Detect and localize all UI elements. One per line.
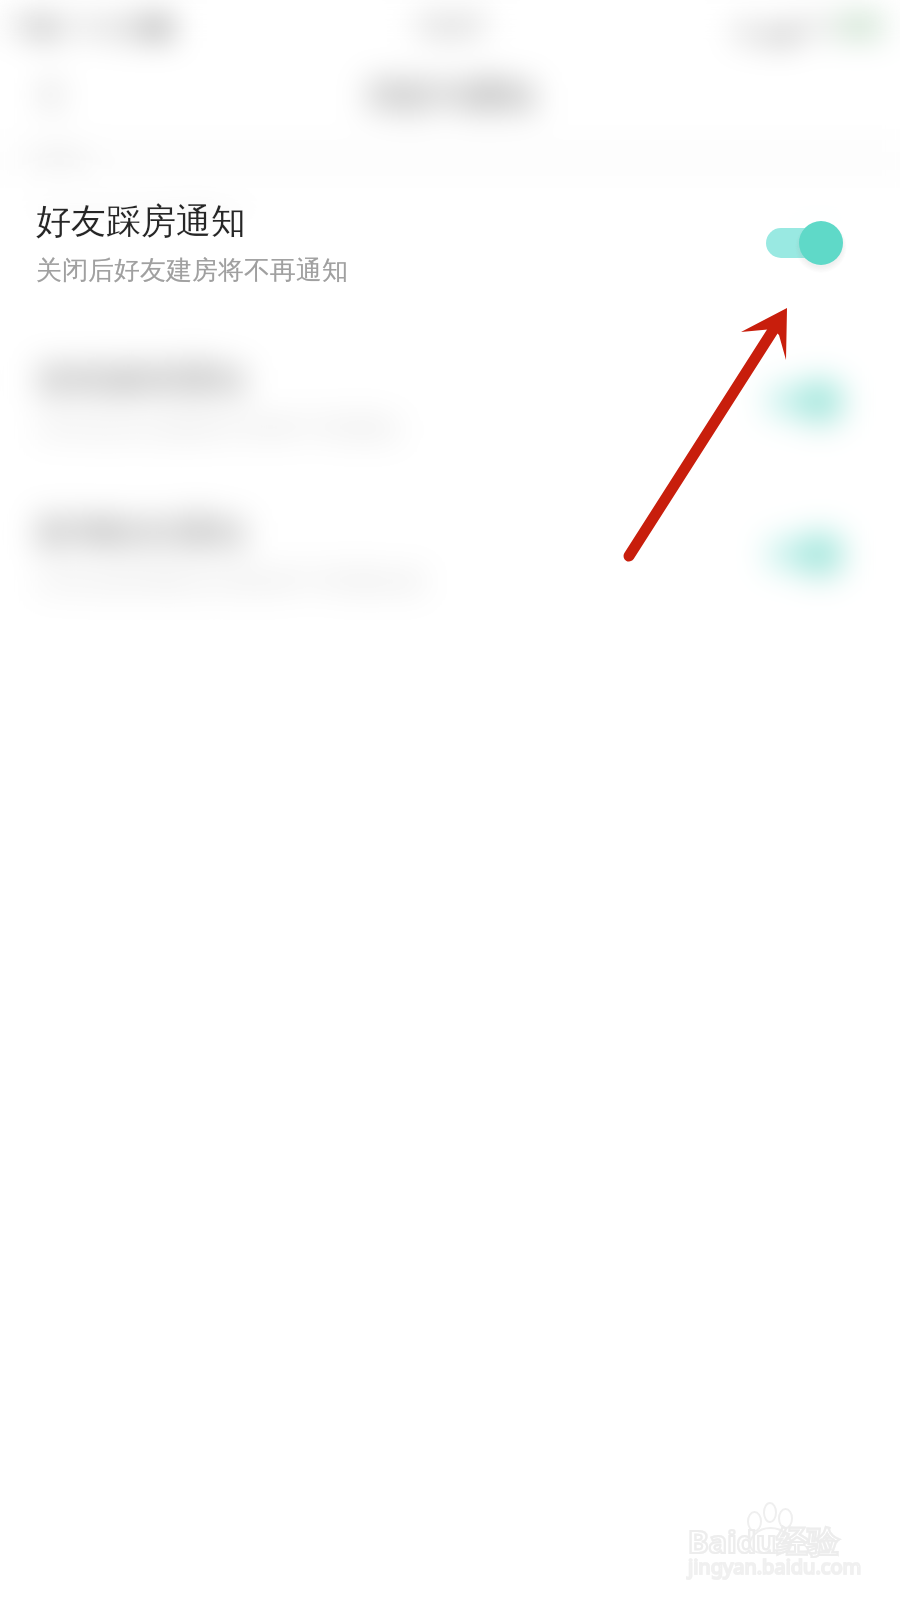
staticText: jingyan.baidu.com: [688, 1553, 862, 1580]
staticText: Baidu经验: [688, 1520, 839, 1562]
staticText: 好友踩房通知: [36, 199, 246, 243]
button[interactable]: Toggle: [766, 378, 843, 424]
button[interactable]: Toggle: [766, 230, 843, 276]
button[interactable]: Toggle: [766, 531, 843, 577]
staticText: 关闭后好友建房将不再通知: [36, 254, 348, 287]
staticText: 好友踩房通知: [36, 209, 246, 253]
staticText: 游戏邀请通知: [36, 357, 246, 401]
staticText: 新增粉丝通知: [36, 510, 246, 554]
button[interactable]: 新增粉丝通知: [0, 477, 900, 630]
button[interactable]: 好友踩房通知: [0, 182, 900, 324]
staticText: ▲ ▂▄ 4G: [737, 10, 832, 41]
staticText: 10:07: [415, 7, 485, 44]
staticText: 关闭后好友建房将不再通知: [36, 264, 348, 297]
staticText: 消息与通知: [365, 74, 535, 117]
staticText: ✉▣♪✰◎▤■: [10, 10, 173, 41]
button[interactable]: 好友踩房通知开关: [766, 220, 843, 266]
button[interactable]: 好友踩房通知: [0, 172, 900, 314]
button[interactable]: 游戏邀请通知: [0, 324, 900, 477]
